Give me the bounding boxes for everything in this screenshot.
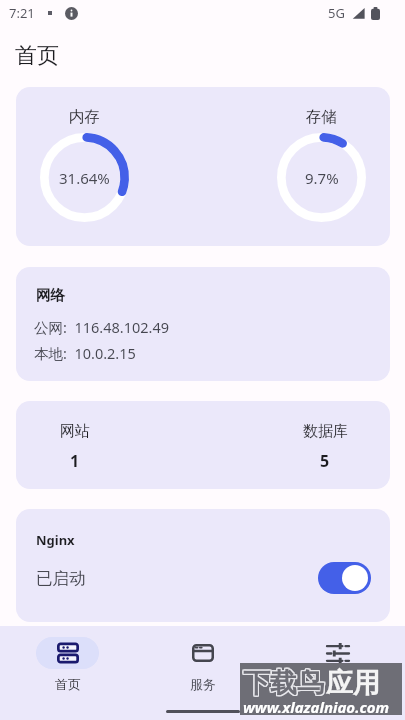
staticText: 内存: [69, 107, 100, 127]
button[interactable]: 网站: [16, 401, 390, 489]
button[interactable]: 内存: [16, 87, 390, 246]
button[interactable]: Nginx: [16, 509, 390, 622]
staticText: 存储: [306, 107, 337, 127]
other: 服务: [192, 644, 214, 662]
staticText: 下载鸟: [243, 666, 324, 700]
staticText: 数据库: [303, 422, 348, 441]
staticText: 下载鸟: [242, 667, 323, 701]
other: 设置: [327, 645, 349, 662]
staticText: www.xlazalniao.com: [243, 697, 390, 717]
staticText: 下载鸟: [243, 665, 324, 699]
button[interactable]: 设置: [270, 637, 405, 669]
button[interactable]: 首页: [0, 637, 135, 692]
staticText: 下载鸟: [242, 665, 323, 699]
staticText: Nginx: [36, 531, 75, 549]
staticText: 31.64%: [59, 168, 110, 188]
staticText: 下载鸟: [244, 667, 325, 701]
button[interactable]: 网络: [16, 267, 390, 381]
staticText: 已启动: [36, 568, 86, 589]
other: 首页: [57, 642, 79, 664]
button[interactable]: 服务: [135, 637, 270, 692]
staticText: 首页: [15, 42, 59, 70]
staticText: 9.7%: [305, 168, 339, 188]
staticText: 7:21: [9, 4, 35, 22]
staticText: 1: [70, 450, 80, 472]
staticText: 服务: [190, 676, 216, 692]
staticText: 下载鸟: [244, 665, 325, 699]
staticText: 网站: [60, 422, 90, 441]
staticText: 应用: [326, 666, 380, 700]
staticText: 本地: 10.0.2.15: [34, 343, 136, 363]
button[interactable]: Nginx 开关: [318, 562, 371, 594]
staticText: 5G: [328, 4, 345, 22]
staticText: 首页: [55, 676, 81, 692]
staticText: 下载鸟: [244, 666, 325, 700]
staticText: 网络: [36, 286, 65, 304]
staticText: 5: [320, 450, 330, 472]
staticText: 下载鸟: [243, 667, 324, 701]
staticText: 下载鸟: [242, 666, 323, 700]
staticText: 下载鸟: [243, 666, 324, 700]
staticText: 公网: 116.48.102.49: [34, 317, 170, 337]
